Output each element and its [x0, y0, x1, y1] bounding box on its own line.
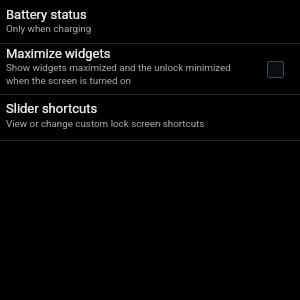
staticText: Slider shortcuts — [6, 101, 98, 116]
staticText: View or change custom lock screen shortc… — [6, 118, 205, 129]
staticText: Only when charging — [6, 23, 92, 34]
button[interactable]: Battery status — [0, 0, 300, 43]
button[interactable]: Maximize widgets — [0, 44, 300, 94]
button[interactable]: Slider shortcuts — [0, 95, 300, 140]
button[interactable]: Maximize widgets check box — [267, 61, 284, 78]
staticText: Show widgets maximized and the unlock mi… — [6, 62, 231, 86]
staticText: Battery status — [6, 7, 87, 22]
staticText: Maximize widgets — [6, 46, 111, 61]
